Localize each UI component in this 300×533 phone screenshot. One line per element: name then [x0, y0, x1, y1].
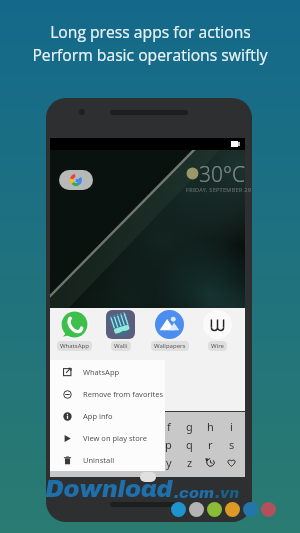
staticText: n — [144, 437, 151, 452]
staticText: a — [60, 419, 67, 434]
staticText: .vn — [215, 485, 240, 501]
staticText: p — [165, 437, 172, 452]
staticText: Download — [45, 476, 173, 502]
button[interactable]: i — [225, 418, 238, 435]
staticText: t — [62, 455, 66, 470]
staticText: 30°C — [199, 160, 246, 189]
button[interactable]: Colour swatch — [189, 502, 204, 517]
button[interactable]: f — [162, 418, 175, 435]
button[interactable]: WhatsApp — [50, 360, 165, 383]
staticText: j — [62, 437, 65, 452]
button[interactable]: b — [78, 418, 91, 435]
button[interactable]: z — [183, 453, 196, 471]
staticText: u — [81, 455, 88, 470]
staticText: Perform basic operations swiftly — [32, 44, 268, 65]
staticText: .com — [174, 485, 215, 501]
button[interactable]: u — [78, 453, 91, 471]
button[interactable]: Colour swatch — [207, 502, 222, 517]
button[interactable]: WhatsApp — [52, 310, 97, 351]
staticText: q — [186, 437, 193, 452]
staticText: l — [104, 437, 107, 452]
staticText: App info — [83, 411, 113, 421]
button[interactable]: g — [183, 418, 196, 435]
staticText: View on play store — [83, 433, 148, 443]
staticText: v — [103, 455, 109, 470]
button[interactable]: a — [57, 418, 70, 435]
staticText: h — [207, 419, 214, 434]
staticText: Remove from favorites — [83, 389, 164, 399]
staticText: WhatsApp — [83, 367, 120, 377]
staticText: f — [167, 419, 171, 434]
staticText: m — [121, 437, 132, 452]
button[interactable]: s — [225, 435, 238, 453]
button[interactable]: t — [57, 453, 70, 471]
button[interactable]: Remove from favorites — [50, 383, 165, 405]
button[interactable]: r — [204, 435, 217, 453]
button[interactable]: n — [141, 435, 154, 453]
staticText: Uninstall — [83, 455, 115, 465]
staticText: g — [186, 419, 193, 434]
button[interactable]: y — [162, 453, 175, 471]
button[interactable]: c — [99, 418, 112, 435]
button[interactable]: Colour swatch — [261, 502, 276, 517]
button[interactable]: Wallpapers — [147, 310, 192, 351]
button[interactable]: Colour swatch — [243, 502, 258, 517]
button[interactable]: q — [183, 435, 196, 453]
staticText: Wallpapers — [154, 342, 186, 350]
button[interactable]: j — [57, 435, 70, 453]
button[interactable]: m — [120, 435, 133, 453]
button[interactable]: Colour swatch — [225, 502, 240, 517]
button[interactable]: Colour swatch — [171, 502, 186, 517]
staticText: FRIDAY, SEPTEMBER 29 — [186, 186, 252, 193]
button[interactable] — [204, 453, 217, 471]
button[interactable]: Wire — [195, 310, 240, 351]
button[interactable]: k — [78, 435, 91, 453]
button[interactable]: v — [99, 453, 112, 471]
button[interactable]: h — [204, 418, 217, 435]
staticText: WhatsApp — [60, 342, 89, 350]
button[interactable]: Google search — [59, 170, 93, 190]
staticText: r — [208, 437, 213, 452]
button[interactable]: App info — [50, 405, 165, 427]
button[interactable]: l — [99, 435, 112, 453]
staticText: y — [166, 455, 172, 470]
staticText: k — [82, 437, 88, 452]
button[interactable]: View on play store — [50, 427, 165, 449]
button[interactable]: Uninstall — [50, 449, 165, 471]
button[interactable]: Walli — [98, 310, 143, 351]
staticText: s — [229, 437, 235, 452]
staticText: Wire — [211, 342, 224, 350]
button[interactable] — [225, 453, 238, 471]
staticText: i — [230, 419, 233, 434]
staticText: z — [187, 455, 193, 470]
staticText: Walli — [114, 342, 128, 350]
button[interactable]: p — [162, 435, 175, 453]
staticText: Long press apps for actions — [50, 21, 251, 42]
